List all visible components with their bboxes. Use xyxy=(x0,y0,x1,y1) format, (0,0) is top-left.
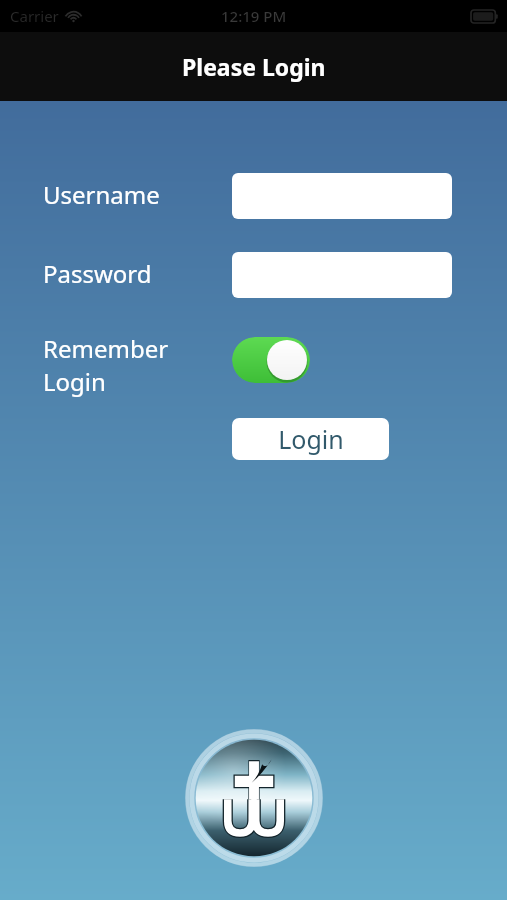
staticText: Login xyxy=(278,422,344,456)
staticText: Please Login xyxy=(182,51,326,82)
staticText: 12:19 PM xyxy=(221,6,287,26)
staticText: Password xyxy=(43,257,152,290)
button[interactable]: Login xyxy=(232,418,389,460)
staticText: Carrier xyxy=(10,6,59,26)
button[interactable]: Remember Login toggle, on xyxy=(232,337,310,383)
staticText: Login xyxy=(43,365,106,398)
staticText: Remember xyxy=(43,332,169,365)
button[interactable] xyxy=(232,173,452,219)
other: App logo xyxy=(185,729,323,867)
staticText: Username xyxy=(43,178,160,211)
button[interactable] xyxy=(232,252,452,298)
